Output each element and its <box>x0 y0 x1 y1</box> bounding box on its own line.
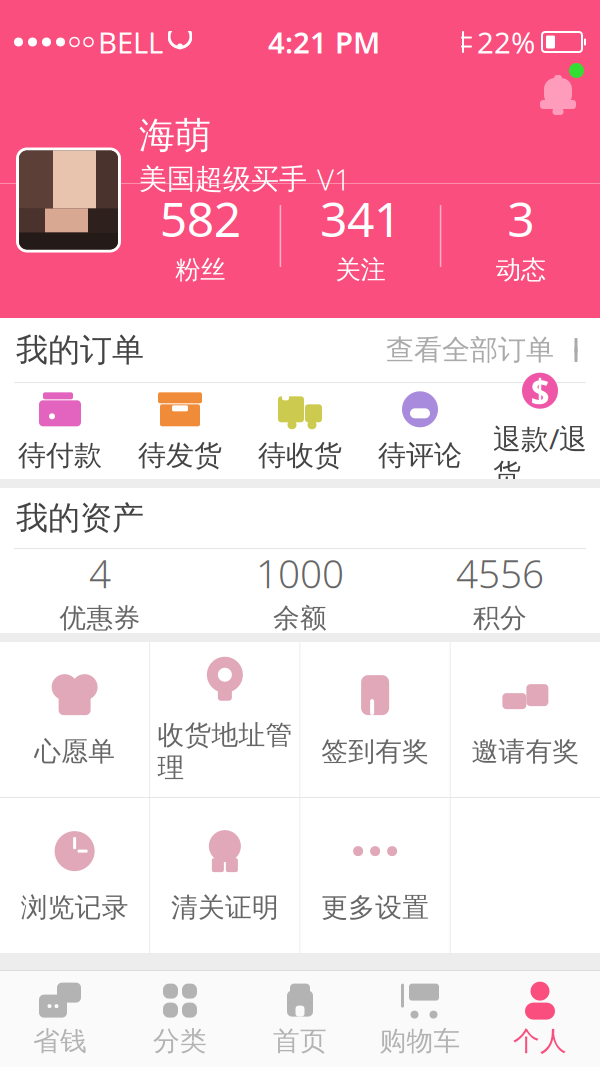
staticText: 3 <box>507 187 534 250</box>
button[interactable]: 我的订单 <box>0 318 600 382</box>
staticText: 首页 <box>273 1025 327 1057</box>
button[interactable]: 1000 <box>200 549 400 633</box>
staticText: 582 <box>160 187 241 250</box>
button[interactable]: 3 <box>441 192 600 280</box>
staticText: 购物车 <box>379 1025 460 1057</box>
button[interactable]: 清关证明 <box>150 798 299 953</box>
button[interactable]: 待收货 <box>240 377 360 485</box>
staticText: 美国超级买手 <box>139 162 307 196</box>
staticText: 签到有奖 <box>321 735 429 768</box>
staticText: 优惠券 <box>59 602 140 635</box>
staticText: 清关证明 <box>171 891 279 924</box>
button[interactable]: 签到有奖 <box>300 642 450 797</box>
button[interactable]: S <box>480 359 600 503</box>
button[interactable]: Profile photo <box>16 147 121 252</box>
staticText: 查看全部订单 <box>386 333 554 367</box>
staticText: 心愿单 <box>34 735 115 768</box>
button[interactable]: 待评论 <box>360 377 480 485</box>
staticText: 粉丝 <box>175 254 225 285</box>
staticText: 341 <box>320 187 401 250</box>
button[interactable]: 收货地址管理 <box>150 642 299 797</box>
staticText: 个人 <box>513 1025 567 1057</box>
button[interactable]: 分类 <box>120 971 240 1067</box>
staticText: 积分 <box>473 602 527 635</box>
button[interactable]: 待付款 <box>0 377 120 485</box>
staticText: 待收货 <box>258 438 342 473</box>
button[interactable]: 341 <box>281 192 440 280</box>
staticText: 22% <box>477 22 535 61</box>
button[interactable]: 首页 <box>240 971 360 1067</box>
staticText: 我的资产 <box>16 498 144 538</box>
staticText: 更多设置 <box>321 891 429 924</box>
button[interactable]: 邀请有奖 <box>451 642 600 797</box>
staticText: 待付款 <box>18 438 102 473</box>
staticText: 分类 <box>153 1025 207 1057</box>
button[interactable]: 4556 <box>400 549 600 633</box>
staticText: 余额 <box>273 602 327 635</box>
button[interactable]: 心愿单 <box>0 642 149 797</box>
staticText: 海萌 <box>139 113 211 158</box>
staticText: 省钱 <box>33 1025 87 1057</box>
button[interactable]: 浏览记录 <box>0 798 149 953</box>
staticText: 关注 <box>335 254 385 285</box>
staticText: 待发货 <box>138 438 222 473</box>
button[interactable]: 更多设置 <box>300 798 450 953</box>
button[interactable]: Notifications <box>532 63 584 121</box>
staticText: V1 <box>317 160 351 199</box>
staticText: S <box>530 368 549 414</box>
button[interactable]: 个人 <box>480 971 600 1067</box>
staticText: 收货地址管理 <box>157 719 292 784</box>
button[interactable]: 582 <box>121 192 280 280</box>
staticText: 浏览记录 <box>21 891 129 924</box>
staticText: 待评论 <box>378 438 462 473</box>
staticText: 邀请有奖 <box>471 735 579 768</box>
staticText: 4556 <box>456 547 544 599</box>
button[interactable]: 购物车 <box>360 971 480 1067</box>
staticText: 4 <box>89 547 111 599</box>
staticText: BELL <box>98 22 163 61</box>
staticText: 4:21 PM <box>268 22 380 61</box>
staticText: 退款/退货 <box>493 420 587 491</box>
button[interactable]: 待发货 <box>120 377 240 485</box>
staticText: 我的订单 <box>16 330 144 370</box>
button[interactable]: 4 <box>0 549 200 633</box>
staticText: 动态 <box>496 254 546 285</box>
staticText: 1000 <box>256 547 344 599</box>
button[interactable]: 省钱 <box>0 971 120 1067</box>
